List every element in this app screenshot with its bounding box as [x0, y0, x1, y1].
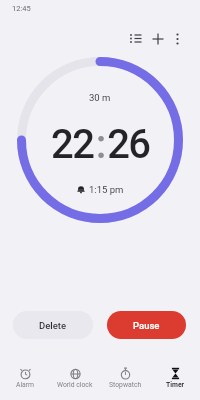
- staticText: 1:15 pm: [89, 184, 124, 195]
- staticText: 22 : 26: [51, 121, 150, 168]
- staticText: Delete: [39, 320, 67, 331]
- staticText: Alarm: [16, 381, 35, 389]
- staticText: Stopwatch: [109, 381, 142, 389]
- staticText: Timer: [166, 381, 185, 389]
- staticText: Pause: [133, 320, 160, 331]
- staticText: 30 m: [89, 92, 111, 103]
- staticText: 12:45: [12, 4, 31, 13]
- staticText: World clock: [57, 381, 93, 389]
